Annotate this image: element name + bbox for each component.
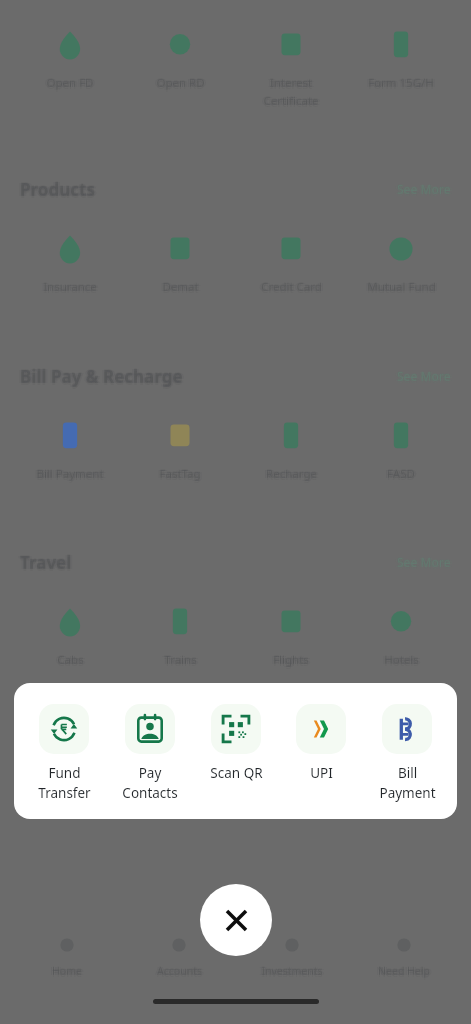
button[interactable]: Bill Payment [367, 704, 447, 802]
staticText: See More [397, 368, 451, 384]
button[interactable]: Credit Card [243, 222, 339, 295]
staticText: See More [397, 181, 451, 197]
staticText: Flights [275, 652, 311, 668]
staticText: See More [395, 181, 449, 197]
button[interactable]: Close [200, 884, 272, 956]
staticText: See More [395, 554, 449, 570]
staticText: Home [52, 963, 82, 977]
staticText: Scan QR [210, 764, 263, 782]
staticText: FASD [387, 465, 415, 481]
staticText: Credit Card [261, 278, 322, 294]
button[interactable]: UPI [281, 704, 361, 782]
button[interactable]: Investments [246, 934, 338, 978]
staticText: Interest Certificate [265, 75, 321, 108]
staticText: FASD [389, 466, 417, 482]
staticText: Insurance [43, 281, 97, 297]
staticText: See More [397, 367, 451, 383]
staticText: See More [397, 554, 451, 570]
staticText: Demat [160, 279, 197, 295]
staticText: Products [20, 177, 95, 200]
staticText: Mutual Fund [369, 279, 438, 295]
staticText: See More [395, 368, 449, 384]
staticText: FastTag [159, 468, 201, 484]
button[interactable]: Bill Payment [22, 409, 118, 482]
staticText: Need Help [378, 964, 430, 978]
staticText: Open FD [44, 75, 92, 91]
staticText: Recharge [266, 465, 317, 481]
staticText: Recharge [266, 468, 317, 484]
staticText: Mutual Fund [367, 279, 436, 295]
button[interactable]: FastTag [132, 409, 228, 482]
staticText: Credit Card [261, 279, 322, 295]
staticText: Pay Contacts [122, 764, 178, 802]
staticText: Demat [162, 278, 199, 294]
staticText: Trains [164, 652, 197, 668]
staticText: Flights [273, 651, 309, 667]
other: Pay Contacts [135, 714, 165, 744]
button[interactable]: Form 15G/H [353, 18, 449, 91]
button[interactable]: Accounts [133, 934, 225, 978]
button[interactable]: Demat [132, 222, 228, 295]
staticText: Form 15G/H [366, 75, 432, 91]
staticText: Bill Payment [38, 466, 106, 482]
staticText: Flights [271, 652, 307, 668]
button[interactable]: Open FD [22, 18, 118, 91]
staticText: Trains [164, 651, 197, 667]
staticText: Bill Payment [36, 465, 104, 481]
staticText: Credit Card [259, 279, 320, 295]
staticText: Hotels [384, 651, 419, 667]
button[interactable]: Hotels [353, 595, 449, 668]
staticText: Travel [22, 551, 74, 574]
staticText: Accounts [157, 964, 202, 978]
staticText: Insurance [43, 279, 97, 295]
staticText: Bill Payment [34, 466, 102, 482]
button[interactable]: FASD [353, 409, 449, 482]
staticText: Investments [259, 964, 321, 978]
staticText: Bill Payment [36, 468, 104, 484]
staticText: Travel [20, 550, 72, 573]
button[interactable]: Pay Contacts [110, 704, 190, 802]
staticText: Recharge [268, 466, 319, 482]
staticText: Demat [162, 281, 199, 297]
button[interactable]: Interest Certificate [243, 18, 339, 108]
button[interactable]: Trains [132, 595, 228, 668]
staticText: Bill Pay & Recharge [22, 365, 185, 388]
button[interactable]: Flights [243, 595, 339, 668]
staticText: Cabs [59, 652, 86, 668]
staticText: Open RD [154, 75, 203, 91]
button[interactable]: Need Help [358, 934, 450, 978]
staticText: Credit Card [263, 279, 324, 295]
staticText: Travel [20, 553, 72, 576]
staticText: Travel [20, 551, 72, 574]
button[interactable]: Scan QR [196, 704, 276, 782]
staticText: Demat [162, 279, 199, 295]
staticText: UPI [310, 764, 333, 782]
staticText: Need Help [378, 963, 430, 977]
staticText: Investments [261, 964, 323, 978]
button[interactable]: Open RD [132, 18, 228, 91]
staticText: Home [52, 964, 82, 978]
button[interactable]: Recharge [243, 409, 339, 482]
staticText: Cabs [57, 651, 84, 667]
staticText: Hotels [382, 652, 417, 668]
staticText: Form 15G/H [370, 75, 436, 91]
staticText: Interest Certificate [263, 77, 319, 110]
staticText: Insurance [45, 279, 99, 295]
staticText: See More [397, 180, 451, 196]
staticText: Open FD [46, 75, 94, 91]
staticText: Cabs [57, 652, 84, 668]
button[interactable]: Mutual Fund [353, 222, 449, 295]
button[interactable]: Insurance [22, 222, 118, 295]
staticText: Trains [164, 654, 197, 670]
button[interactable]: Fund Transfer [24, 704, 104, 802]
staticText: Insurance [41, 279, 95, 295]
staticText: Products [22, 178, 97, 201]
staticText: Bill Pay & Recharge [20, 364, 183, 387]
staticText: Accounts [157, 963, 202, 977]
button[interactable]: Cabs [22, 595, 118, 668]
staticText: Products [20, 178, 95, 201]
staticText: Hotels [386, 652, 421, 668]
staticText: Flights [273, 652, 309, 668]
staticText: Open FD [48, 75, 96, 91]
